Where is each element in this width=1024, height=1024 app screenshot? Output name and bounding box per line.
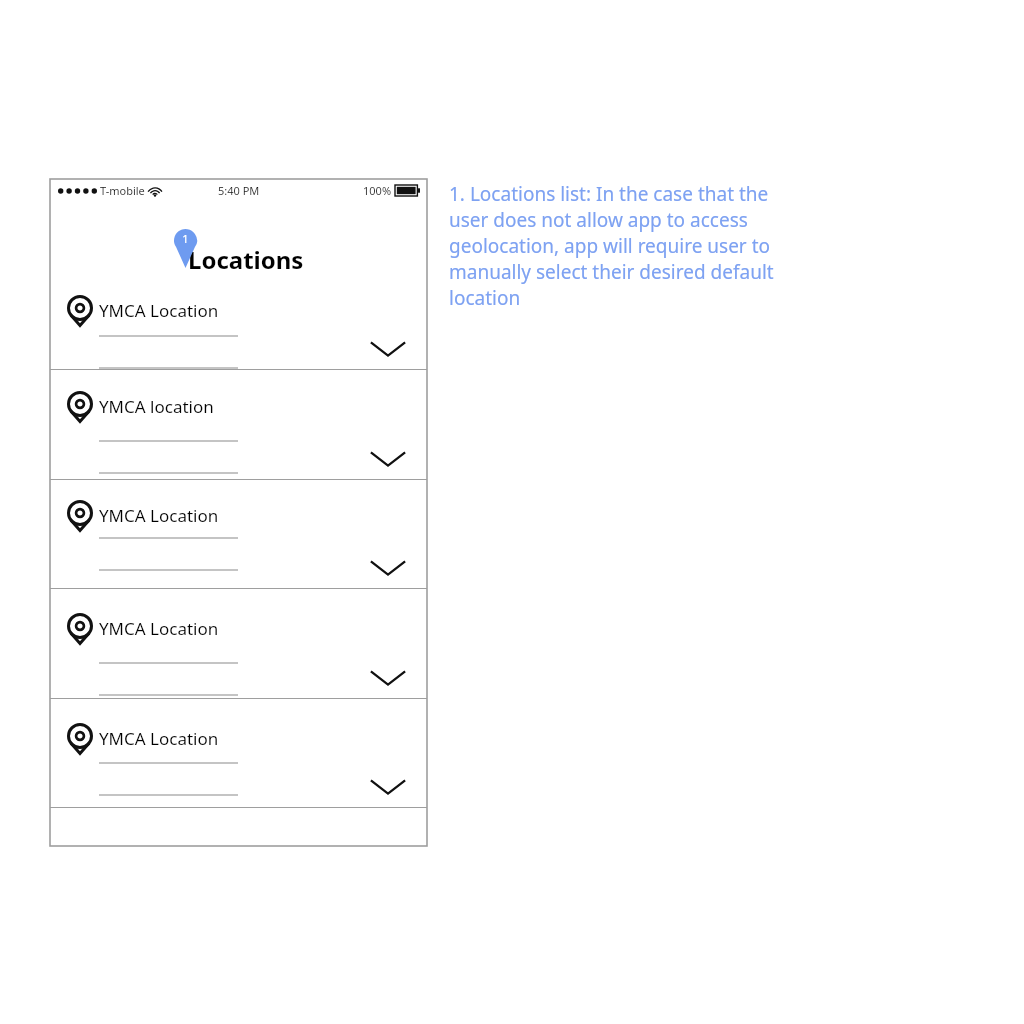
staticText: 1 (182, 231, 189, 246)
staticText: T-mobile (100, 183, 145, 198)
staticText: Locations (188, 243, 304, 276)
button[interactable]: Expand location details (369, 776, 407, 798)
staticText: YMCA Location (99, 504, 219, 527)
button[interactable]: YMCA Location (50, 283, 427, 369)
staticText: 5:40 PM (218, 183, 260, 198)
button[interactable]: YMCA location (50, 370, 427, 479)
button[interactable]: Expand location details (369, 557, 407, 579)
button[interactable]: YMCA Location (50, 480, 427, 588)
staticText: 1. Locations list: In the case that the … (449, 181, 803, 311)
staticText: YMCA Location (99, 727, 219, 750)
staticText: YMCA Location (99, 299, 219, 322)
staticText: YMCA location (99, 395, 214, 418)
button[interactable]: YMCA Location (50, 589, 427, 698)
button[interactable]: Expand location details (369, 338, 407, 360)
button[interactable]: YMCA Location (50, 699, 427, 807)
button[interactable]: Expand location details (369, 667, 407, 689)
staticText: 100% (363, 183, 392, 198)
button[interactable]: Expand location details (369, 448, 407, 470)
staticText: YMCA Location (99, 617, 219, 640)
